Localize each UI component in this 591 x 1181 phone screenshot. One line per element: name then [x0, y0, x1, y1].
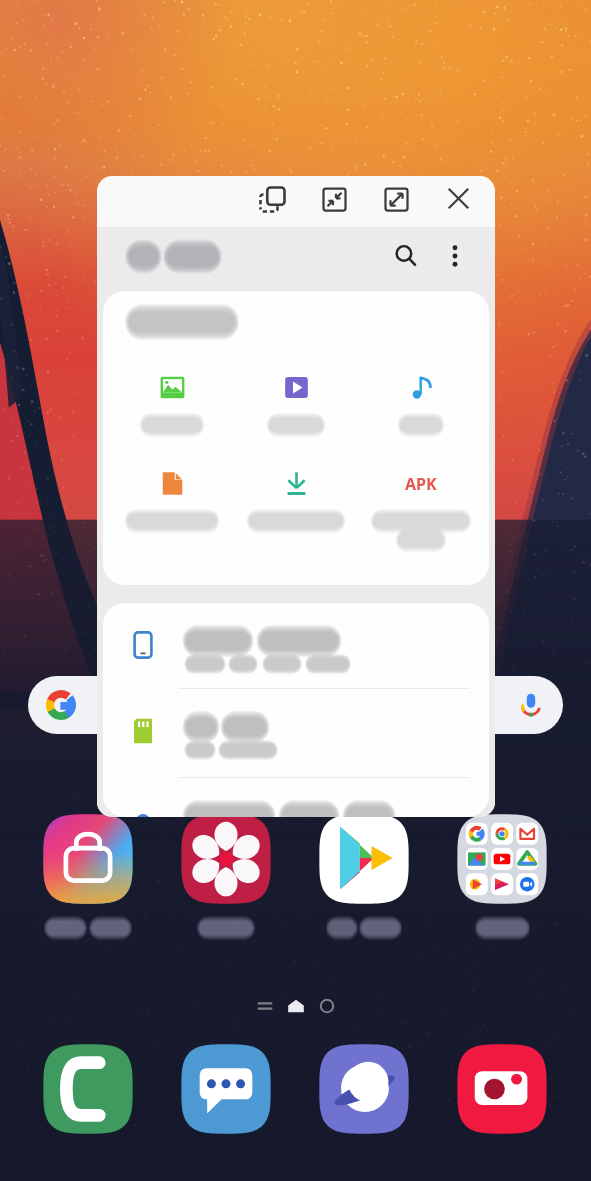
button[interactable]: Maximize	[376, 179, 417, 220]
button[interactable]	[317, 812, 411, 934]
button[interactable]	[41, 812, 135, 934]
button[interactable]	[116, 368, 228, 437]
button[interactable]: Internet	[317, 1042, 411, 1136]
button[interactable]: Home	[283, 993, 309, 1019]
button[interactable]: APK	[365, 464, 477, 552]
button[interactable]	[103, 778, 489, 817]
button[interactable]	[365, 368, 477, 437]
button[interactable]: Recents	[252, 993, 278, 1019]
button[interactable]	[455, 812, 549, 934]
button[interactable]: More options	[442, 243, 468, 269]
button[interactable]	[240, 368, 352, 437]
button[interactable]	[116, 464, 228, 533]
button[interactable]: Close	[438, 178, 479, 219]
button[interactable]: Phone	[41, 1042, 135, 1136]
button[interactable]: Search	[393, 243, 419, 269]
button[interactable]	[103, 689, 489, 777]
button[interactable]: Pop-up view	[252, 179, 293, 220]
button[interactable]: Minimize	[314, 179, 355, 220]
staticText: APK	[405, 473, 437, 495]
button[interactable]	[179, 812, 273, 934]
button[interactable]: Messages	[179, 1042, 273, 1136]
button[interactable]	[28, 676, 563, 734]
button[interactable]	[103, 603, 489, 688]
button[interactable]: Camera	[455, 1042, 549, 1136]
button[interactable]	[240, 464, 352, 533]
button[interactable]: Back	[314, 993, 340, 1019]
